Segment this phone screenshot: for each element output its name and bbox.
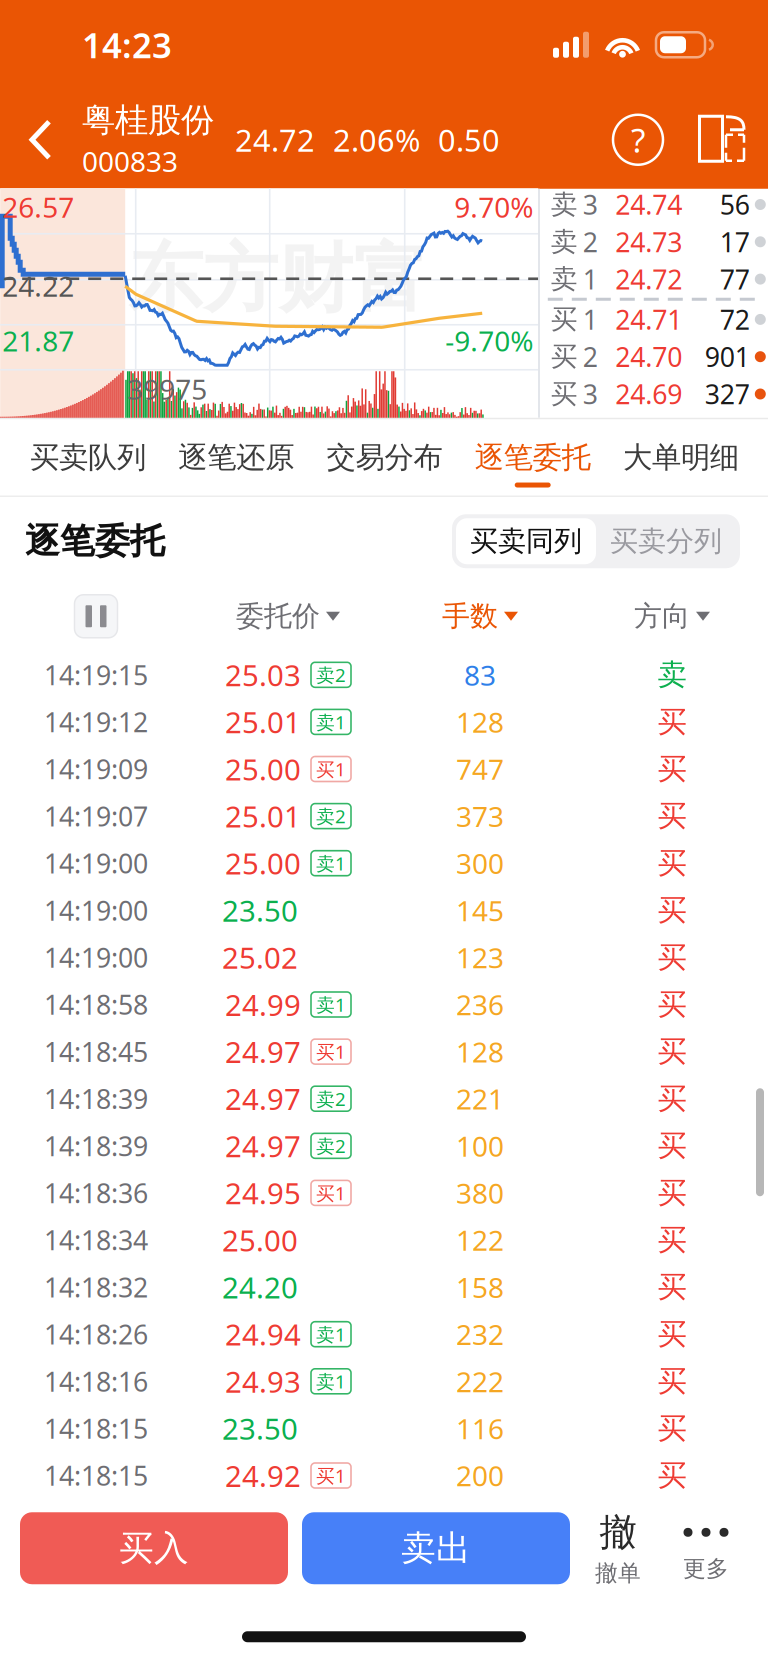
- staticText: 卖: [657, 657, 686, 693]
- staticText: 56: [720, 187, 750, 222]
- staticText: 14:19:00: [44, 893, 148, 928]
- staticText: 买1: [316, 757, 346, 781]
- staticText: 买入: [119, 1527, 189, 1570]
- staticText: 236: [456, 986, 504, 1023]
- staticText: 747: [456, 750, 504, 788]
- staticText: 卖2: [316, 1086, 346, 1111]
- staticText: 23.50: [222, 1409, 298, 1448]
- staticText: 21.87: [2, 322, 74, 359]
- staticText: 39975: [127, 370, 207, 407]
- staticText: 卖2: [316, 662, 346, 687]
- staticText: 373: [456, 797, 504, 835]
- staticText: 14:19:12: [44, 704, 148, 740]
- staticText: 14:19:15: [44, 657, 148, 692]
- staticText: 买: [657, 845, 686, 881]
- staticText: 128: [456, 703, 504, 740]
- staticText: 24.20: [222, 1268, 298, 1307]
- button[interactable]: 方向: [576, 585, 768, 647]
- staticText: 25.01: [225, 797, 301, 836]
- staticText: 14:19:09: [44, 751, 148, 787]
- staticText: 卖2: [316, 1133, 346, 1158]
- staticText: 24.97: [225, 1032, 301, 1071]
- staticText: 14:19:00: [44, 940, 148, 975]
- staticText: 买: [657, 1034, 686, 1070]
- button[interactable]: 更多: [666, 1508, 746, 1588]
- button[interactable]: Back: [0, 91, 82, 189]
- staticText: 24.73: [615, 224, 682, 259]
- staticText: 24.22: [2, 267, 74, 304]
- staticText: 买卖同列: [470, 524, 582, 558]
- staticText: 24.94: [225, 1315, 301, 1354]
- staticText: 24.93: [225, 1362, 301, 1401]
- staticText: 买1: [316, 1463, 346, 1488]
- staticText: 380: [456, 1174, 504, 1211]
- staticText: 222: [456, 1363, 504, 1400]
- staticText: 14:18:39: [44, 1128, 148, 1163]
- staticText: 24.92: [225, 1456, 301, 1495]
- staticText: 232: [456, 1316, 504, 1353]
- staticText: 14:18:32: [44, 1269, 148, 1305]
- button[interactable]: Pause updates: [0, 585, 192, 647]
- button[interactable]: 买卖队列: [14, 419, 162, 495]
- staticText: 25.01: [225, 702, 301, 741]
- button[interactable]: 买入: [20, 1512, 288, 1584]
- button[interactable]: 买卖分列: [596, 518, 736, 564]
- staticText: 买: [657, 1316, 686, 1352]
- button[interactable]: 逐笔还原: [162, 419, 310, 495]
- staticText: 14:18:58: [44, 987, 148, 1022]
- staticText: 25.02: [222, 938, 298, 977]
- staticText: -9.70%: [445, 322, 533, 359]
- staticText: 14:18:39: [44, 1081, 148, 1116]
- staticText: 300: [456, 845, 504, 882]
- staticText: 17: [720, 224, 750, 259]
- staticText: 145: [456, 892, 504, 929]
- staticText: 83: [464, 656, 496, 693]
- staticText: 买: [657, 1222, 686, 1258]
- staticText: 14:18:15: [44, 1458, 148, 1493]
- staticText: 买: [657, 1269, 686, 1305]
- button[interactable]: 买卖同列: [456, 518, 596, 564]
- staticText: 123: [456, 939, 504, 976]
- button[interactable]: 大单明细: [607, 419, 755, 495]
- staticText: 买卖队列: [30, 439, 146, 475]
- staticText: 24.71: [615, 302, 682, 337]
- staticText: 买: [657, 798, 686, 834]
- staticText: 卖: [551, 263, 578, 295]
- staticText: 24.97: [225, 1079, 301, 1118]
- staticText: 221: [456, 1080, 504, 1117]
- staticText: 卖出: [401, 1527, 471, 1570]
- staticText: 委托价: [236, 599, 320, 633]
- staticText: 卖2: [316, 804, 346, 828]
- staticText: 327: [705, 376, 750, 412]
- staticText: 14:18:34: [44, 1222, 148, 1258]
- button[interactable]: Help: [600, 91, 676, 189]
- staticText: 卖1: [316, 992, 346, 1017]
- staticText: 24.99: [225, 985, 301, 1024]
- button[interactable]: 手数: [384, 585, 576, 647]
- staticText: 2: [583, 224, 598, 259]
- staticText: 24.95: [225, 1173, 301, 1212]
- staticText: 更多: [683, 1555, 729, 1583]
- staticText: 2.06%: [333, 119, 420, 160]
- button[interactable]: 委托价: [192, 585, 384, 647]
- staticText: 买: [551, 303, 578, 336]
- staticText: 买1: [316, 1039, 346, 1064]
- button[interactable]: 撤: [578, 1508, 658, 1588]
- staticText: 25.00: [222, 1220, 298, 1259]
- button[interactable]: 逐笔委托: [459, 419, 607, 495]
- staticText: 14:18:26: [44, 1316, 148, 1352]
- staticText: 158: [456, 1268, 504, 1306]
- button[interactable]: 交易分布: [310, 419, 459, 495]
- staticText: 14:19:07: [44, 798, 148, 834]
- button[interactable]: Rotate to landscape: [676, 91, 768, 189]
- staticText: 3: [583, 187, 598, 222]
- staticText: 卖1: [316, 1322, 346, 1347]
- staticText: 77: [720, 261, 750, 297]
- staticText: 手数: [442, 599, 498, 633]
- staticText: 买: [657, 704, 686, 740]
- staticText: 23.50: [222, 891, 298, 930]
- staticText: 24.72: [615, 261, 682, 297]
- staticText: 撤单: [595, 1559, 641, 1587]
- staticText: 卖1: [316, 709, 346, 734]
- button[interactable]: 卖出: [302, 1512, 570, 1584]
